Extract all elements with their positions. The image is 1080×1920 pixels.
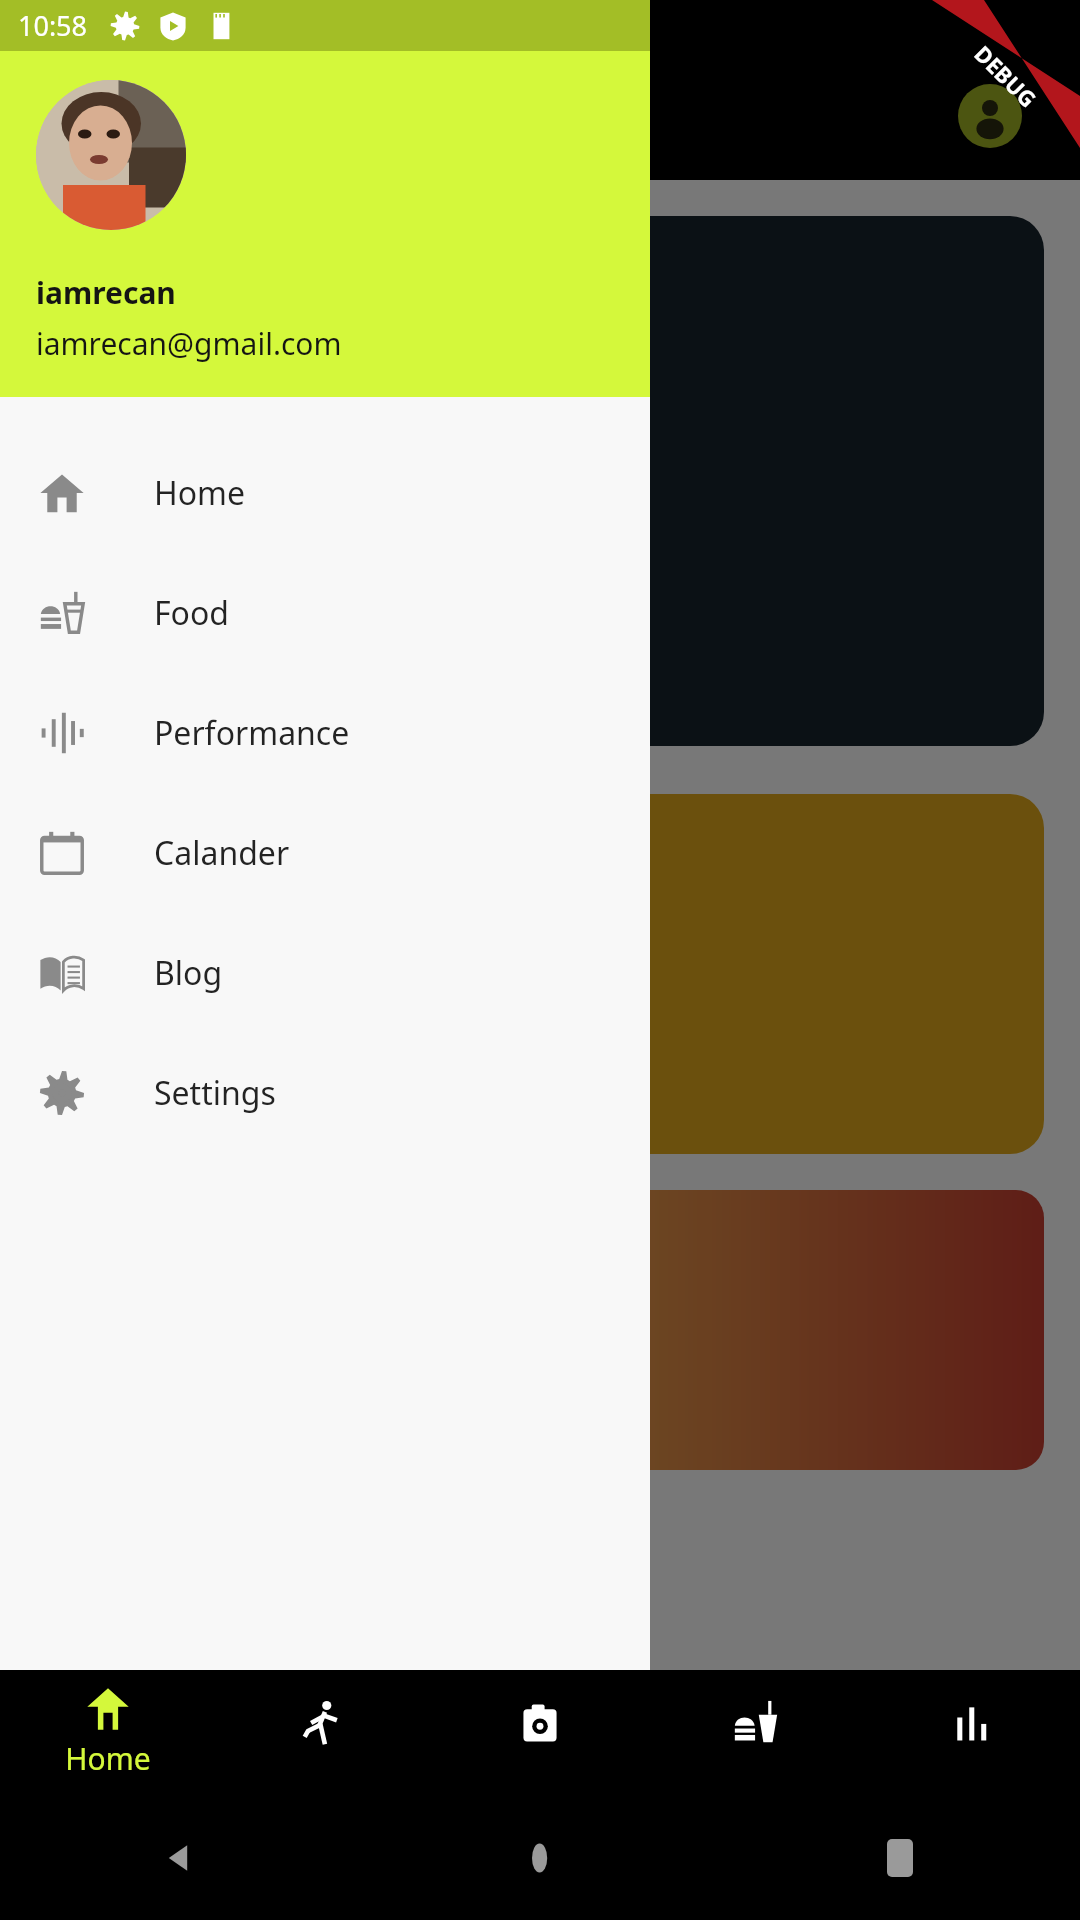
button[interactable]: Settings xyxy=(0,1033,650,1153)
staticText: Home xyxy=(65,1738,151,1779)
staticText: Settings xyxy=(154,1071,276,1115)
staticText: 2,4h xyxy=(84,622,190,693)
button[interactable]: Home xyxy=(360,1795,720,1920)
button[interactable]: Food xyxy=(0,553,650,673)
staticText: DEBUG xyxy=(968,38,1043,113)
button[interactable]: Back xyxy=(0,1795,360,1920)
staticText: Food xyxy=(154,591,230,635)
button[interactable]: Camera xyxy=(432,1670,648,1795)
staticText: Home xyxy=(154,471,246,515)
button[interactable]: Home xyxy=(0,1670,216,1795)
button[interactable]: Statistics xyxy=(864,1670,1080,1795)
button[interactable]: Performance xyxy=(0,673,650,793)
staticText: Performance xyxy=(154,711,350,755)
staticText: PLAYING xyxy=(84,693,183,726)
button[interactable]: Blog xyxy=(0,913,650,1033)
staticText: 18347 xyxy=(84,262,233,333)
button[interactable]: Recents xyxy=(720,1795,1080,1920)
button[interactable]: Home xyxy=(0,433,650,553)
staticText: 17,3k xyxy=(84,442,215,513)
staticText: RUNNING xyxy=(84,333,197,366)
staticText: Calander xyxy=(154,831,290,875)
staticText: Blog xyxy=(154,951,223,995)
staticText: iamrecan xyxy=(36,272,176,313)
staticText: iamrecan@gmail.com xyxy=(36,323,342,364)
button[interactable]: Running xyxy=(216,1670,432,1795)
button[interactable]: Calander xyxy=(0,793,650,913)
button[interactable]: Food xyxy=(648,1670,864,1795)
staticText: 10:58 xyxy=(18,7,88,44)
